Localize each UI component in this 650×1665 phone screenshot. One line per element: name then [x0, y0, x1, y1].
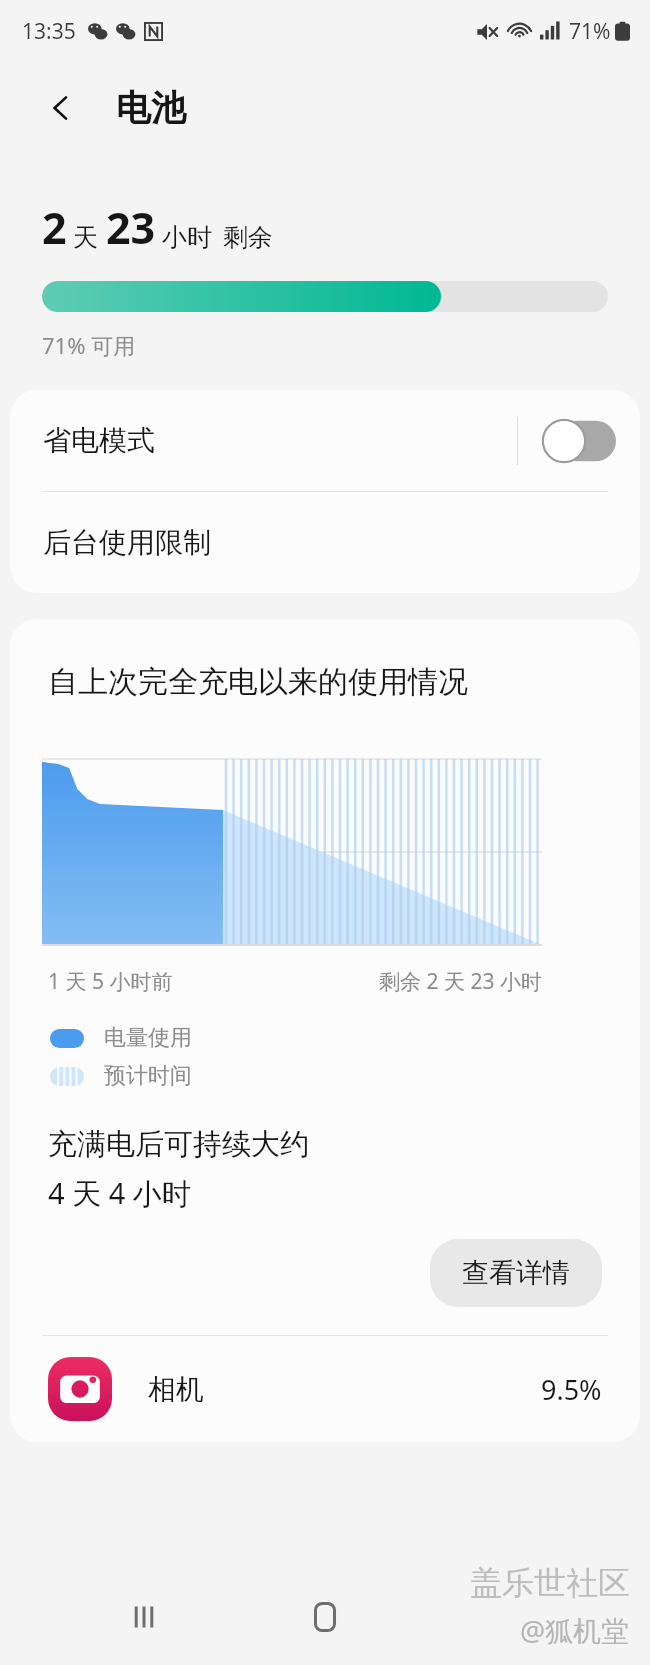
- staticText: 71%: [569, 17, 611, 46]
- staticText: 电池: [116, 86, 186, 130]
- staticText: 小时: [162, 222, 212, 253]
- staticText: 剩余 2 天 23 小时: [379, 967, 542, 996]
- button[interactable]: Back: [469, 1579, 545, 1655]
- button[interactable]: Home: [287, 1579, 363, 1655]
- staticText: 查看详情: [462, 1256, 570, 1290]
- staticText: 剩余: [223, 222, 273, 253]
- staticText: 后台使用限制: [43, 525, 211, 560]
- staticText: 省电模式: [43, 423, 155, 458]
- staticText: 充满电后可持续大约: [48, 1126, 309, 1163]
- button[interactable]: Recents: [106, 1579, 182, 1655]
- staticText: 4 天 4 小时: [48, 1173, 191, 1213]
- staticText: @狐机堂: [520, 1611, 630, 1649]
- staticText: 9.5%: [541, 1371, 602, 1408]
- button[interactable]: 省电模式 开关: [542, 419, 616, 463]
- staticText: 预计时间: [104, 1062, 192, 1090]
- staticText: 1 天 5 小时前: [48, 967, 173, 996]
- staticText: 23: [106, 198, 156, 257]
- staticText: 自上次完全充电以来的使用情况: [48, 663, 468, 701]
- staticText: 相机: [148, 1372, 204, 1407]
- button[interactable]: 后台使用限制: [10, 492, 640, 593]
- button[interactable]: 相机: [10, 1336, 640, 1442]
- staticText: 盖乐世社区: [470, 1563, 630, 1603]
- staticText: 13:35: [22, 17, 76, 46]
- button[interactable]: 查看详情: [430, 1239, 602, 1307]
- staticText: 电量使用: [104, 1024, 192, 1052]
- staticText: 71% 可用: [42, 330, 136, 360]
- staticText: 天: [73, 222, 98, 253]
- button[interactable]: Back: [32, 79, 90, 137]
- button[interactable]: 省电模式: [10, 390, 640, 491]
- staticText: 2: [42, 198, 67, 257]
